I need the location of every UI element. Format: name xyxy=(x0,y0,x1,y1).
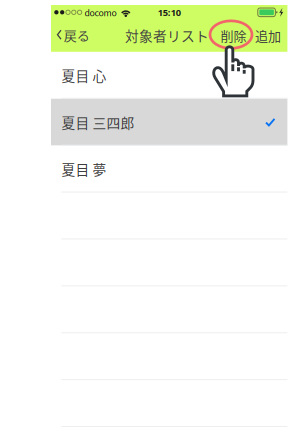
staticText: 15:10 xyxy=(158,6,181,18)
button[interactable]: 戻る xyxy=(52,21,95,49)
staticText: 夏目 夢 xyxy=(61,159,106,179)
staticText: 削除 xyxy=(220,26,246,45)
button[interactable]: 追加 xyxy=(249,21,287,49)
staticText: 対象者リスト xyxy=(125,25,209,45)
staticText: docomo xyxy=(85,6,117,19)
button[interactable]: 夏目 三四郎 xyxy=(51,99,287,146)
staticText: 追加 xyxy=(255,26,281,45)
button[interactable]: 夏目 心 xyxy=(51,52,287,99)
button[interactable]: 夏目 夢 xyxy=(51,146,287,192)
staticText: 夏目 心 xyxy=(61,65,106,85)
button[interactable]: 削除 xyxy=(214,21,252,49)
staticText: 戻る xyxy=(64,25,90,44)
staticText: 夏目 三四郎 xyxy=(61,112,134,132)
